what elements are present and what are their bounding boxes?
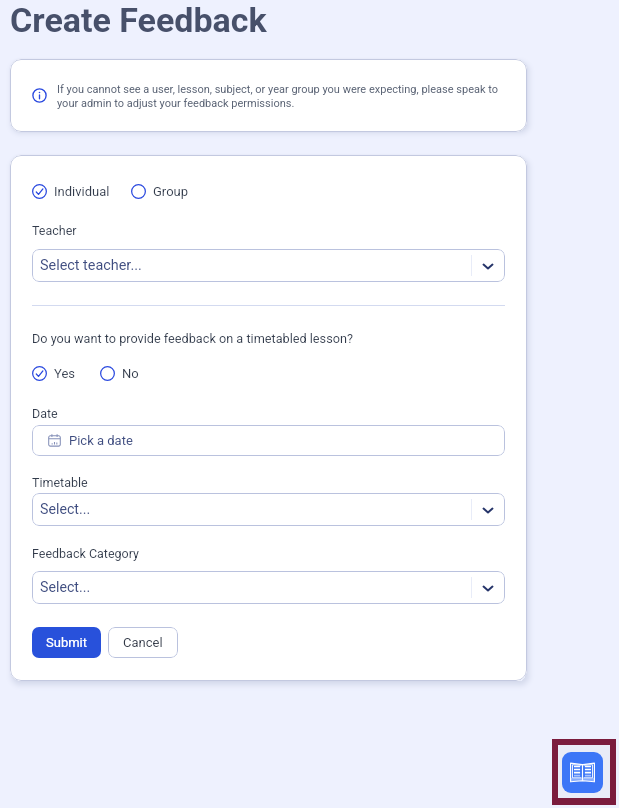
staticText: No (122, 366, 139, 381)
staticText: Date (32, 406, 58, 421)
button[interactable]: Open help guide (562, 752, 603, 793)
staticText: Create Feedback (10, 0, 267, 40)
button[interactable]: Group (131, 184, 189, 199)
button[interactable]: Yes (32, 366, 75, 381)
button[interactable]: No (100, 366, 139, 381)
button[interactable]: Select... (32, 571, 505, 604)
staticText: Select teacher... (40, 257, 142, 274)
staticText: Submit (46, 635, 87, 650)
staticText: If you cannot see a user, lesson, subjec… (57, 82, 499, 110)
staticText: Select... (40, 501, 91, 518)
button[interactable]: Submit (32, 627, 101, 658)
button[interactable]: Select... (32, 493, 505, 526)
staticText: Select... (40, 579, 91, 596)
staticText: Teacher (32, 223, 77, 238)
staticText: Individual (54, 184, 110, 199)
button[interactable]: Individual (32, 184, 110, 199)
staticText: Yes (54, 366, 75, 381)
button[interactable]: Select teacher... (32, 249, 505, 282)
staticText: Do you want to provide feedback on a tim… (32, 331, 353, 346)
staticText: Pick a date (69, 433, 133, 448)
button[interactable]: Cancel (108, 627, 178, 658)
staticText: Timetable (32, 475, 88, 490)
staticText: Cancel (123, 635, 163, 650)
staticText: Group (153, 184, 189, 199)
staticText: Feedback Category (32, 546, 139, 561)
button[interactable]: Pick a date (32, 425, 505, 456)
